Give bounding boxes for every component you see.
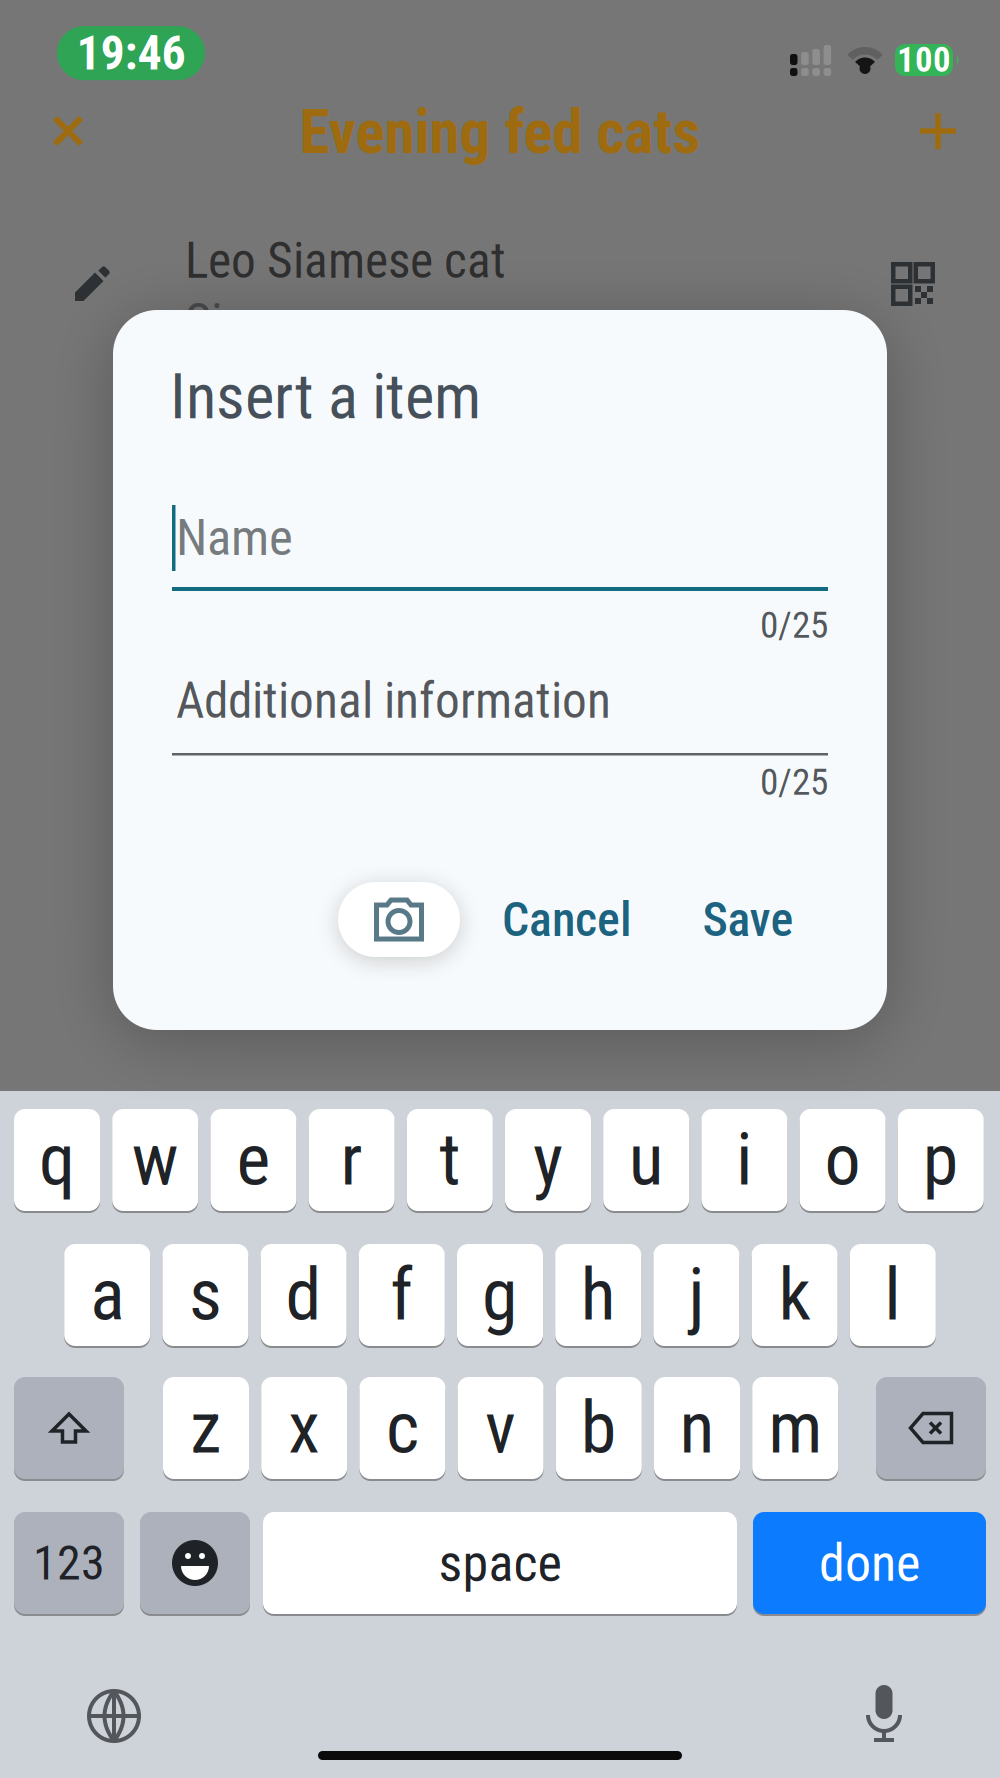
staticText: w <box>132 1118 179 1202</box>
button[interactable]: h <box>555 1244 641 1348</box>
staticText: f <box>390 1253 413 1337</box>
button[interactable]: r <box>309 1109 395 1213</box>
button[interactable]: j <box>653 1244 739 1348</box>
button[interactable]: 123 <box>14 1512 124 1616</box>
staticText: r <box>341 1118 363 1202</box>
staticText: s <box>189 1253 222 1337</box>
button[interactable]: m <box>752 1377 838 1481</box>
staticText: x <box>288 1386 320 1470</box>
staticText: 123 <box>33 1535 105 1591</box>
button[interactable]: Shift <box>14 1377 124 1481</box>
button[interactable]: Delete <box>876 1377 986 1481</box>
staticText: space <box>438 1532 561 1593</box>
staticText: 19:46 <box>76 25 185 81</box>
button[interactable]: Take photo <box>338 882 460 957</box>
button[interactable]: a <box>64 1244 150 1348</box>
staticText: u <box>629 1118 664 1202</box>
button[interactable]: g <box>457 1244 543 1348</box>
button[interactable]: v <box>458 1377 544 1481</box>
staticText: m <box>768 1386 822 1470</box>
button[interactable]: Dictate <box>863 1684 905 1744</box>
staticText: a <box>90 1253 124 1337</box>
button[interactable]: Additional information <box>172 672 828 750</box>
staticText: 0/25 <box>760 760 828 804</box>
button[interactable]: x <box>261 1377 347 1481</box>
staticText: done <box>819 1532 920 1593</box>
button[interactable]: k <box>752 1244 838 1348</box>
button[interactable]: space <box>263 1512 737 1616</box>
button[interactable]: i <box>701 1109 787 1213</box>
staticText: 0/25 <box>760 603 828 647</box>
button[interactable]: s <box>162 1244 248 1348</box>
button[interactable]: n <box>654 1377 740 1481</box>
staticText: p <box>923 1118 959 1202</box>
button[interactable]: d <box>261 1244 347 1348</box>
button[interactable]: p <box>898 1109 984 1213</box>
staticText: j <box>688 1253 704 1337</box>
staticText: k <box>779 1253 811 1337</box>
button[interactable]: o <box>800 1109 886 1213</box>
staticText: e <box>236 1118 270 1202</box>
button[interactable]: t <box>407 1109 493 1213</box>
staticText: Additional information <box>176 672 611 730</box>
staticText: o <box>825 1118 861 1202</box>
button[interactable]: f <box>359 1244 445 1348</box>
staticText: i <box>736 1118 753 1202</box>
button[interactable]: q <box>14 1109 100 1213</box>
staticText: v <box>485 1386 516 1470</box>
staticText: c <box>386 1386 419 1470</box>
button[interactable]: c <box>359 1377 445 1481</box>
staticText: Name <box>176 508 293 567</box>
staticText: Leo Siamese cat <box>185 232 506 290</box>
button[interactable]: Next keyboard <box>86 1688 142 1744</box>
button[interactable]: Emoji <box>140 1512 250 1616</box>
staticText: Save <box>702 891 793 948</box>
button[interactable]: Name <box>172 503 828 591</box>
staticText: z <box>190 1386 222 1470</box>
button[interactable]: b <box>556 1377 642 1481</box>
staticText: b <box>581 1386 617 1470</box>
staticText: 100 <box>897 40 951 80</box>
staticText: g <box>482 1253 518 1337</box>
button[interactable]: y <box>505 1109 591 1213</box>
button[interactable]: QR code <box>891 262 935 306</box>
staticText: Siamese <box>185 292 356 351</box>
button[interactable]: u <box>603 1109 689 1213</box>
staticText: l <box>884 1253 901 1337</box>
staticText: d <box>286 1253 322 1337</box>
staticText: y <box>533 1118 563 1202</box>
staticText: Evening fed cats <box>299 96 700 168</box>
button[interactable]: Edit <box>70 262 114 306</box>
button[interactable]: z <box>163 1377 249 1481</box>
staticText: n <box>679 1386 714 1470</box>
staticText: Insert a item <box>170 360 481 433</box>
button[interactable]: Save <box>668 882 828 957</box>
button[interactable]: Add <box>908 101 968 161</box>
staticText: Cancel <box>502 891 632 948</box>
button[interactable]: w <box>112 1109 198 1213</box>
button[interactable]: done <box>753 1512 986 1616</box>
button[interactable]: Close <box>38 101 98 161</box>
button[interactable]: e <box>210 1109 296 1213</box>
button[interactable]: l <box>850 1244 936 1348</box>
staticText: q <box>39 1118 75 1202</box>
button[interactable]: Cancel <box>457 882 677 957</box>
staticText: h <box>581 1253 616 1337</box>
staticText: t <box>439 1118 460 1202</box>
